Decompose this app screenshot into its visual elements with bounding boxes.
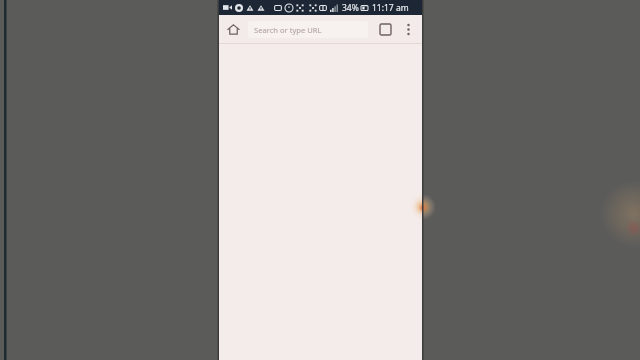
- staticText: Search or type URL: [254, 25, 322, 35]
- button[interactable]: Search or type URL: [248, 21, 368, 38]
- button[interactable]: Tabs: [374, 18, 396, 40]
- button[interactable]: Home: [223, 19, 244, 40]
- button[interactable]: More options: [397, 18, 419, 40]
- staticText: 11:17 am: [372, 2, 409, 14]
- staticText: 34%: [342, 2, 359, 14]
